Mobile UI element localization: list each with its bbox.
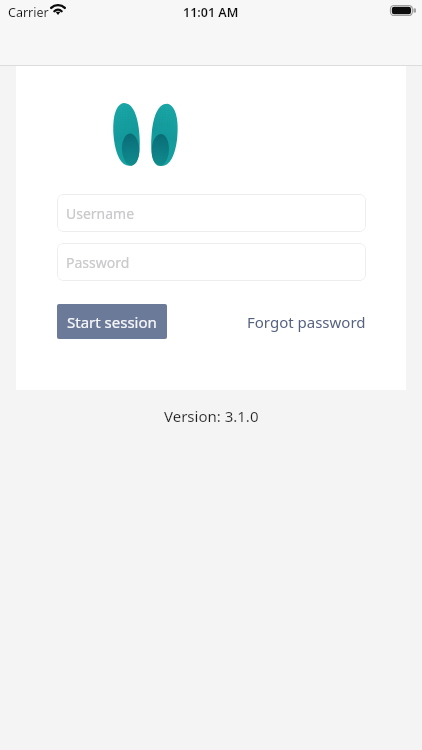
staticText: Carrier [8, 4, 49, 21]
staticText: Start session [67, 312, 157, 332]
button[interactable]: Password [57, 243, 366, 281]
staticText: 11:01 AM [183, 4, 239, 21]
other: Wi-Fi signal [50, 4, 66, 15]
button[interactable]: Start session [57, 304, 167, 339]
staticText: Forgot password [247, 312, 366, 332]
staticText: Password [66, 253, 130, 272]
button[interactable]: Forgot password [241, 306, 366, 338]
staticText: Version: 3.1.0 [164, 406, 259, 426]
other: App logo [113, 103, 178, 166]
other: Battery full [390, 5, 416, 16]
staticText: Username [66, 204, 135, 223]
button[interactable]: Username [57, 194, 366, 232]
